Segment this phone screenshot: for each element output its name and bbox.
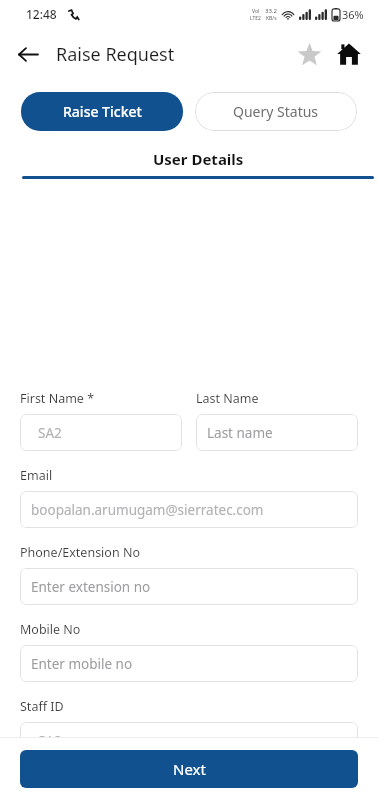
button[interactable]: Last name (196, 414, 358, 451)
button[interactable]: SA2 (20, 722, 358, 759)
staticText: SA2 (38, 732, 62, 750)
staticText: Enter extension no (31, 578, 151, 596)
staticText: Enter mobile no (31, 655, 133, 673)
staticText: Staff ID (20, 698, 64, 715)
staticText: boopalan.arumugam@sierratec.com (31, 501, 264, 519)
button[interactable]: boopalan.arumugam@sierratec.com (20, 491, 358, 528)
staticText: First Name * (20, 390, 95, 407)
staticText: Mobile No (20, 621, 81, 638)
staticText: Staff Location (20, 775, 101, 792)
staticText: Email (20, 467, 53, 484)
button[interactable]: Enter extension no (20, 568, 358, 605)
staticText: Raise Ticket (63, 102, 142, 121)
staticText: Phone/Extension No (20, 544, 140, 561)
staticText: User Details (153, 149, 244, 169)
button[interactable]: Next (20, 750, 358, 788)
staticText: 33.2 (265, 7, 277, 15)
staticText: 36% (342, 7, 364, 22)
button[interactable]: Raise Ticket (21, 92, 183, 131)
staticText: Next (173, 759, 206, 779)
button[interactable]: SA2 (20, 414, 182, 451)
staticText: SA2 (38, 424, 62, 442)
staticText: 12:48 (26, 6, 57, 22)
button[interactable]: Query Status (195, 92, 357, 131)
staticText: Last Name (196, 390, 259, 407)
staticText: LTE2 (250, 15, 261, 22)
button[interactable]: Back (8, 34, 48, 74)
staticText: Query Status (233, 102, 319, 121)
button[interactable]: Enter mobile no (20, 645, 358, 682)
staticText: Last name (207, 424, 273, 442)
button[interactable]: Home (330, 35, 368, 73)
staticText: KB/s (266, 15, 277, 22)
staticText: Raise Request (56, 42, 175, 67)
button[interactable]: User Details (18, 149, 378, 179)
staticText: Vol (252, 8, 260, 15)
button[interactable]: Favourite (290, 35, 328, 73)
